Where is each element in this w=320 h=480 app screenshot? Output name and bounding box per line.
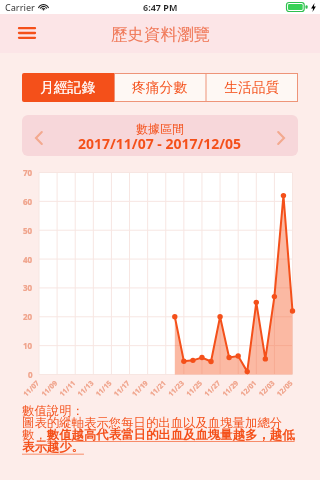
staticText: 數值說明： 圖表的縱軸表示您每日的出血以及血塊量加總分 數，數值越高代表當日的出… [22, 403, 295, 455]
staticText: 數據區間 [136, 121, 184, 136]
button[interactable]: 疼痛分數 [114, 73, 206, 102]
button[interactable]: 生活品質 [206, 73, 298, 102]
staticText: Carrier [5, 1, 35, 13]
staticText: 6:47 PM [143, 1, 178, 13]
button[interactable]: Menu [11, 18, 43, 50]
staticText: 月經記錄 [40, 79, 96, 96]
staticText: 2017/11/07 - 2017/12/05 [78, 134, 242, 153]
button[interactable]: Previous range [22, 115, 56, 156]
button[interactable]: Next range [264, 115, 298, 156]
button[interactable]: 月經記錄 [22, 73, 114, 102]
staticText: 歷史資料瀏覽 [111, 24, 210, 45]
staticText: 生活品質 [224, 79, 280, 96]
staticText: 疼痛分數 [132, 79, 188, 96]
